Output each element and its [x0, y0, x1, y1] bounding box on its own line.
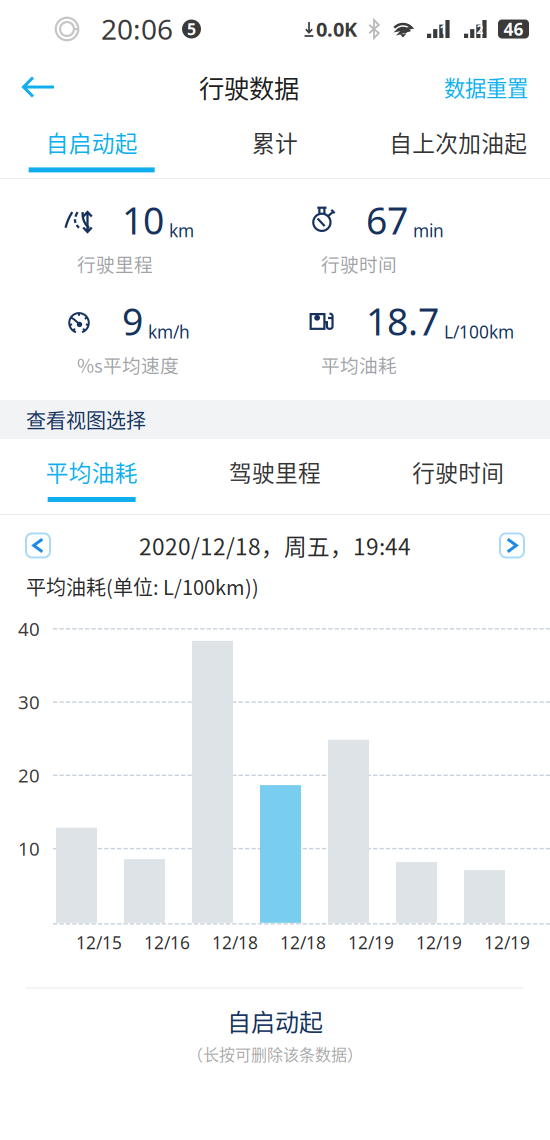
staticText: 累计	[252, 126, 298, 158]
staticText: 20	[18, 763, 40, 788]
staticText: 平均油耗	[46, 455, 138, 488]
button[interactable]: 驾驶里程	[183, 451, 367, 502]
staticText: 30	[18, 689, 40, 715]
staticText: 18.7	[366, 296, 439, 346]
staticText: 行驶时间	[412, 455, 504, 488]
button[interactable]: 返回	[0, 62, 76, 112]
button[interactable]: 平均油耗	[0, 451, 183, 502]
staticText: 40	[18, 616, 40, 641]
staticText: 12/19	[416, 931, 462, 954]
staticText: 12/19	[348, 931, 394, 954]
button[interactable]: 自上次加油起	[367, 122, 550, 172]
staticText: 67	[366, 195, 408, 245]
staticText: 数据重置	[444, 72, 528, 102]
staticText: 平均油耗	[321, 351, 397, 378]
staticText: 自启动起	[46, 126, 138, 158]
staticText: （长按可删除该条数据）	[187, 1042, 363, 1065]
staticText: 行驶里程	[77, 250, 153, 277]
staticText: 2	[476, 21, 483, 37]
staticText: 12/18	[212, 931, 258, 954]
staticText: 12/18	[280, 931, 326, 954]
staticText: %s平均速度	[77, 351, 179, 378]
staticText: 10	[18, 836, 40, 861]
staticText: km	[169, 219, 194, 242]
staticText: 10	[122, 195, 164, 245]
staticText: 自启动起	[227, 1003, 323, 1038]
staticText: 查看视图选择	[26, 405, 146, 434]
staticText: min	[413, 219, 444, 242]
staticText: 9	[122, 296, 143, 346]
staticText: 1	[439, 21, 446, 37]
staticText: 平均油耗(单位: L/100km))	[26, 572, 259, 601]
button[interactable]: 行驶时间	[367, 451, 550, 502]
button[interactable]: 下一条	[500, 533, 524, 557]
staticText: 5	[187, 18, 196, 40]
button[interactable]: 数据重置	[422, 58, 550, 116]
button[interactable]: 上一条	[26, 533, 50, 557]
staticText: 2020/12/18，周五，19:44	[139, 529, 411, 562]
staticText: 46	[503, 17, 523, 41]
staticText: 0.0K	[316, 15, 357, 43]
button[interactable]: 自启动起	[0, 122, 183, 172]
staticText: 12/16	[144, 931, 190, 954]
staticText: 12/15	[76, 931, 122, 954]
staticText: L/100km	[444, 320, 514, 343]
staticText: 行驶数据	[199, 69, 299, 105]
button[interactable]: 累计	[183, 122, 367, 172]
staticText: km/h	[148, 320, 190, 343]
staticText: 行驶时间	[321, 250, 397, 277]
staticText: 12/19	[484, 931, 530, 954]
staticText: 驾驶里程	[229, 455, 321, 488]
staticText: 20:06	[101, 10, 173, 48]
staticText: 自上次加油起	[389, 126, 527, 158]
